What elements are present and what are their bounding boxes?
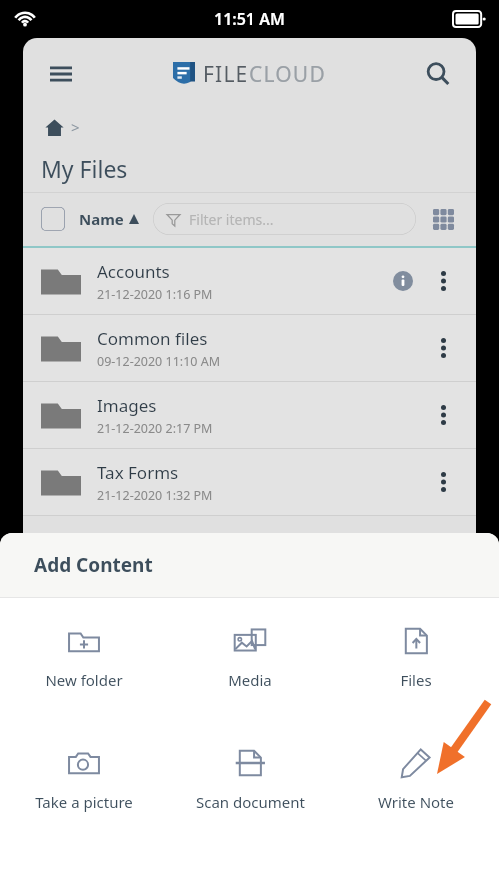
staticText: Write Note	[378, 792, 454, 812]
button[interactable]: Search	[418, 54, 458, 94]
button[interactable]: Images	[23, 382, 476, 448]
staticText: Media	[228, 670, 272, 690]
staticText: Name	[79, 209, 124, 229]
staticText: FILE	[203, 60, 249, 89]
button[interactable]: Tax Forms	[23, 449, 476, 515]
staticText: New folder	[45, 670, 123, 690]
button[interactable]: More options	[428, 400, 458, 430]
button[interactable]: Filter items...	[153, 203, 416, 235]
button[interactable]: Media	[167, 620, 333, 694]
button[interactable]: Take a picture	[0, 742, 167, 816]
staticText: 21-12-2020 2:17 PM	[97, 420, 213, 437]
button[interactable]: Grid view	[428, 204, 458, 234]
button[interactable]: Info	[388, 266, 418, 296]
button[interactable]: More options	[428, 333, 458, 363]
button[interactable]: More options	[428, 266, 458, 296]
staticText: Tax Forms	[97, 461, 179, 484]
staticText: CLOUD	[249, 60, 326, 89]
staticText: Accounts	[97, 260, 170, 283]
staticText: Add Content	[34, 552, 153, 578]
button[interactable]: Menu	[41, 54, 81, 94]
staticText: My Files	[41, 153, 128, 184]
staticText: 21-12-2020 1:16 PM	[97, 286, 213, 303]
button[interactable]: Scan document	[167, 742, 333, 816]
button[interactable]: Select all	[41, 207, 65, 231]
button[interactable]: Write Note	[333, 742, 499, 816]
staticText: Scan document	[196, 792, 305, 812]
staticText: Common files	[97, 327, 208, 350]
staticText: 11:51 AM	[214, 8, 285, 30]
staticText: Filter items...	[189, 210, 274, 229]
button[interactable]: New folder	[0, 620, 167, 694]
staticText: Take a picture	[35, 792, 133, 812]
button[interactable]: Name	[79, 209, 139, 229]
button[interactable]: Common files	[23, 315, 476, 381]
staticText: Files	[400, 670, 432, 690]
button[interactable]: Files	[333, 620, 499, 694]
button[interactable]: More options	[428, 467, 458, 497]
staticText: Images	[97, 394, 157, 417]
button[interactable]: Accounts	[23, 248, 476, 314]
staticText: 21-12-2020 1:32 PM	[97, 487, 213, 504]
staticText: 09-12-2020 11:10 AM	[97, 353, 221, 370]
staticText: >	[71, 117, 80, 137]
button[interactable]: Home	[41, 114, 67, 140]
